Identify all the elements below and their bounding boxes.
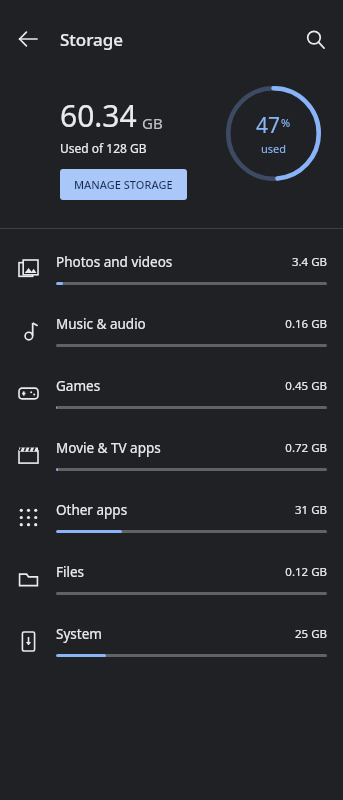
staticText: 0.12 GB [285, 564, 327, 580]
button[interactable]: Files [0, 548, 343, 610]
staticText: MANAGE STORAGE [74, 177, 173, 192]
staticText: Music & audio [56, 315, 285, 333]
button[interactable]: Games [0, 362, 343, 424]
staticText: Games [56, 377, 285, 395]
staticText: 0.45 GB [285, 378, 327, 394]
button[interactable]: Back [6, 17, 50, 61]
staticText: % [281, 115, 291, 130]
staticText: Files [56, 563, 285, 581]
button[interactable]: Music & audio [0, 300, 343, 362]
staticText: 3.4 GB [291, 254, 327, 270]
staticText: System [56, 625, 295, 643]
staticText: Storage [60, 28, 124, 51]
staticText: GB [142, 113, 163, 133]
staticText: Photos and videos [56, 253, 291, 271]
button[interactable]: System [0, 610, 343, 672]
button[interactable]: Other apps [0, 486, 343, 548]
staticText: Movie & TV apps [56, 439, 285, 457]
staticText: Used of 128 GB [60, 140, 147, 156]
staticText: 0.16 GB [285, 316, 327, 332]
button[interactable]: Search [293, 17, 337, 61]
staticText: used [261, 141, 287, 156]
button[interactable]: MANAGE STORAGE [60, 169, 187, 200]
staticText: 31 GB [295, 502, 327, 518]
staticText: 0.72 GB [285, 440, 327, 456]
staticText: 60.34 [60, 95, 137, 136]
button[interactable]: Photos and videos [0, 238, 343, 300]
staticText: Other apps [56, 501, 295, 519]
staticText: 47 [256, 111, 281, 140]
staticText: 25 GB [295, 626, 327, 642]
button[interactable]: Movie & TV apps [0, 424, 343, 486]
